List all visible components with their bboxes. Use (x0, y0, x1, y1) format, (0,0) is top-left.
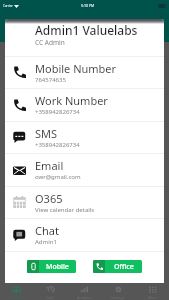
staticText: 5:10 PM (81, 3, 95, 8)
button[interactable]: More (135, 284, 169, 300)
staticText: O365 (35, 191, 63, 206)
staticText: owr@gmail.com (35, 173, 81, 181)
staticText: Mobile Number (35, 61, 117, 76)
button[interactable]: Email (5, 153, 164, 186)
button[interactable]: Analytics (67, 284, 101, 300)
staticText: Carrier (3, 4, 13, 8)
staticText: SMS (35, 126, 58, 141)
staticText: +358942826734 (35, 141, 80, 149)
staticText: More (148, 295, 157, 300)
staticText: Email (35, 158, 64, 173)
staticText: Analytics (77, 295, 92, 300)
button[interactable]: Office (93, 260, 142, 273)
button[interactable]: Calls (33, 284, 67, 300)
staticText: Chat (35, 223, 59, 238)
button[interactable]: O365 (5, 186, 164, 218)
button[interactable]: Chat (5, 218, 164, 251)
staticText: +358942826734 (35, 108, 80, 116)
button[interactable]: Mobile (27, 260, 76, 273)
staticText: View calendar details (35, 206, 95, 214)
staticText: Work Number (35, 93, 108, 108)
staticText: Contacts (9, 295, 24, 300)
staticText: Admin1 (35, 238, 57, 246)
staticText: Settings (111, 295, 125, 300)
staticText: Admin1 Valuelabs (35, 22, 138, 38)
button[interactable]: Contacts (0, 284, 33, 300)
button[interactable]: Settings (101, 284, 135, 300)
staticText: Office (114, 262, 134, 272)
staticText: Calls (46, 295, 54, 300)
button[interactable]: Work Number (5, 88, 164, 121)
staticText: Mobile (46, 262, 69, 272)
button[interactable]: Mobile Number (5, 56, 164, 88)
staticText: 764574635 (35, 76, 66, 84)
staticText: CC Admin (35, 38, 65, 47)
button[interactable]: SMS (5, 121, 164, 153)
